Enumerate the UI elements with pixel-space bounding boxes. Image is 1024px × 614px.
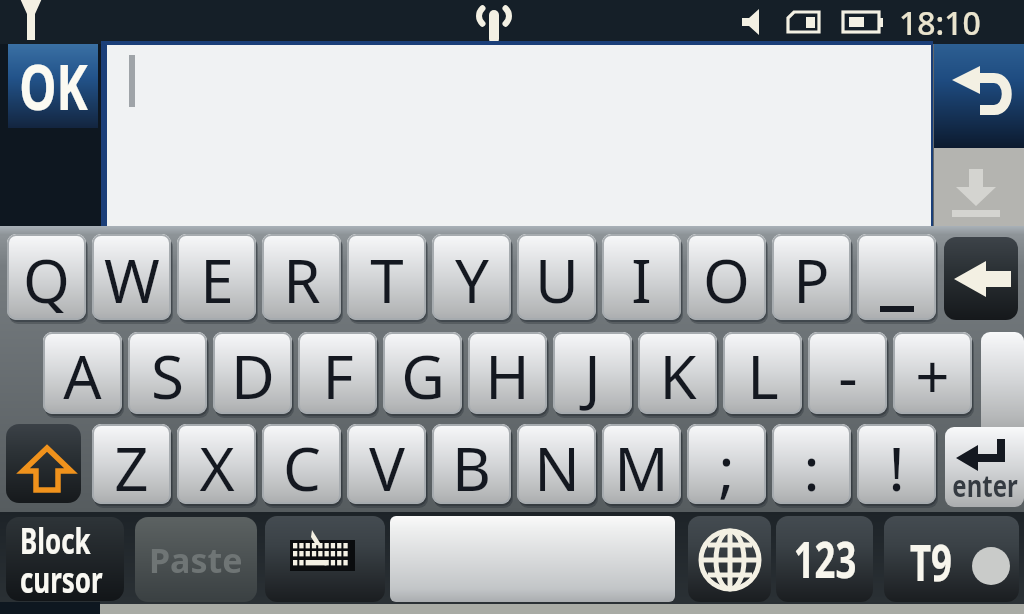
staticText: P: [793, 239, 830, 320]
button[interactable]: K: [638, 332, 717, 414]
staticText: F: [322, 335, 354, 414]
button[interactable]: !: [857, 424, 936, 504]
staticText: X: [199, 427, 235, 504]
staticText: -: [838, 335, 858, 414]
staticText: I: [631, 239, 652, 320]
staticText: :: [803, 427, 820, 504]
button[interactable]: S: [128, 332, 207, 414]
button[interactable]: :: [772, 424, 851, 504]
button[interactable]: G: [383, 332, 462, 414]
button[interactable]: Enter: [945, 427, 1024, 507]
staticText: Y: [455, 239, 489, 320]
staticText: L: [747, 335, 779, 414]
button[interactable]: C: [262, 424, 341, 504]
button[interactable]: Underscore: [857, 234, 936, 320]
button[interactable]: Shift: [6, 424, 81, 503]
staticText: A: [63, 335, 102, 414]
button[interactable]: R: [262, 234, 341, 320]
button[interactable]: T9: [884, 516, 1019, 602]
button[interactable]: V: [347, 424, 426, 504]
button[interactable]: N: [517, 424, 596, 504]
staticText: T: [370, 239, 404, 320]
button[interactable]: ;: [687, 424, 766, 504]
staticText: Z: [114, 427, 149, 504]
button[interactable]: L: [723, 332, 802, 414]
staticText: O: [703, 239, 750, 320]
button[interactable]: A: [43, 332, 122, 414]
button[interactable]: D: [213, 332, 292, 414]
staticText: B: [452, 427, 491, 504]
staticText: OK: [19, 44, 88, 128]
staticText: S: [151, 335, 184, 414]
staticText: C: [283, 427, 321, 504]
button[interactable]: +: [893, 332, 972, 414]
staticText: enter: [952, 465, 1018, 506]
staticText: U: [535, 239, 579, 320]
staticText: T9: [910, 528, 952, 596]
button[interactable]: U: [517, 234, 596, 320]
staticText: J: [584, 335, 601, 414]
staticText: +: [915, 335, 950, 414]
staticText: Paste: [149, 537, 243, 583]
button[interactable]: J: [553, 332, 632, 414]
staticText: G: [401, 335, 445, 414]
button[interactable]: E: [177, 234, 256, 320]
button[interactable]: Y: [432, 234, 511, 320]
staticText: 123: [794, 525, 856, 593]
button[interactable]: P: [772, 234, 851, 320]
button[interactable]: T: [347, 234, 426, 320]
staticText: H: [485, 335, 530, 414]
button[interactable]: Download: [934, 148, 1024, 230]
staticText: !: [888, 427, 905, 504]
button[interactable]: I: [602, 234, 681, 320]
button[interactable]: Text input: [107, 45, 931, 226]
button[interactable]: 123: [776, 516, 873, 602]
staticText: 18:10: [899, 1, 981, 43]
button[interactable]: -: [808, 332, 887, 414]
button[interactable]: O: [687, 234, 766, 320]
button[interactable]: Back: [934, 44, 1024, 148]
staticText: R: [283, 239, 321, 320]
staticText: M: [614, 427, 669, 504]
button[interactable]: W: [92, 234, 171, 320]
button[interactable]: H: [468, 332, 547, 414]
button[interactable]: Enter: [981, 332, 1024, 428]
staticText: Block cursor: [20, 517, 103, 601]
button[interactable]: M: [602, 424, 681, 504]
staticText: W: [104, 239, 160, 320]
button[interactable]: Z: [92, 424, 171, 504]
button[interactable]: B: [432, 424, 511, 504]
button[interactable]: Language: [688, 516, 771, 602]
staticText: Q: [23, 239, 70, 320]
staticText: N: [534, 427, 580, 504]
staticText: V: [369, 427, 405, 504]
button[interactable]: F: [298, 332, 377, 414]
button[interactable]: Space: [390, 516, 675, 602]
button[interactable]: X: [177, 424, 256, 504]
button[interactable]: Q: [7, 234, 86, 320]
button[interactable]: Paste: [135, 517, 257, 602]
button[interactable]: Keyboard layout: [265, 516, 385, 602]
staticText: ;: [718, 427, 735, 504]
button[interactable]: OK: [8, 44, 98, 128]
button[interactable]: Backspace: [944, 237, 1018, 320]
staticText: D: [231, 335, 275, 414]
button[interactable]: Block cursor: [6, 517, 124, 601]
staticText: K: [659, 335, 697, 414]
staticText: E: [200, 239, 234, 320]
